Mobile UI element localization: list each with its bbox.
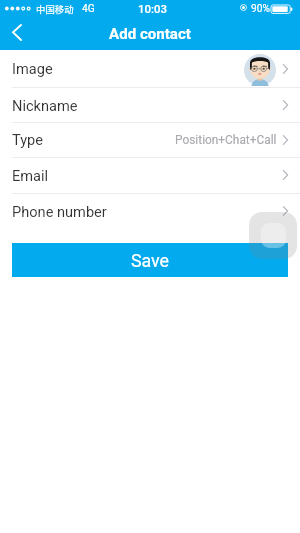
staticText: 10:03 bbox=[138, 2, 167, 15]
button[interactable]: Save bbox=[12, 243, 288, 277]
staticText: Save bbox=[131, 250, 170, 271]
button[interactable]: Assistive touch bbox=[249, 212, 297, 259]
button[interactable]: Image bbox=[0, 50, 300, 87]
button[interactable]: Type bbox=[0, 122, 300, 157]
staticText: Add contact bbox=[109, 25, 191, 43]
staticText: Type bbox=[12, 131, 44, 148]
staticText: Email bbox=[12, 167, 49, 184]
button[interactable]: Email bbox=[0, 157, 300, 193]
button[interactable]: Nickname bbox=[0, 87, 300, 123]
staticText: 4G bbox=[82, 3, 95, 15]
staticText: 中国移动 bbox=[36, 2, 74, 16]
button[interactable]: Phone number bbox=[0, 193, 300, 229]
staticText: Image bbox=[12, 60, 53, 77]
staticText: Phone number bbox=[12, 203, 107, 220]
staticText: Nickname bbox=[12, 97, 78, 114]
staticText: 90% bbox=[251, 3, 270, 15]
button[interactable]: Back bbox=[0, 19, 38, 50]
staticText: Position+Chat+Call bbox=[175, 133, 277, 147]
